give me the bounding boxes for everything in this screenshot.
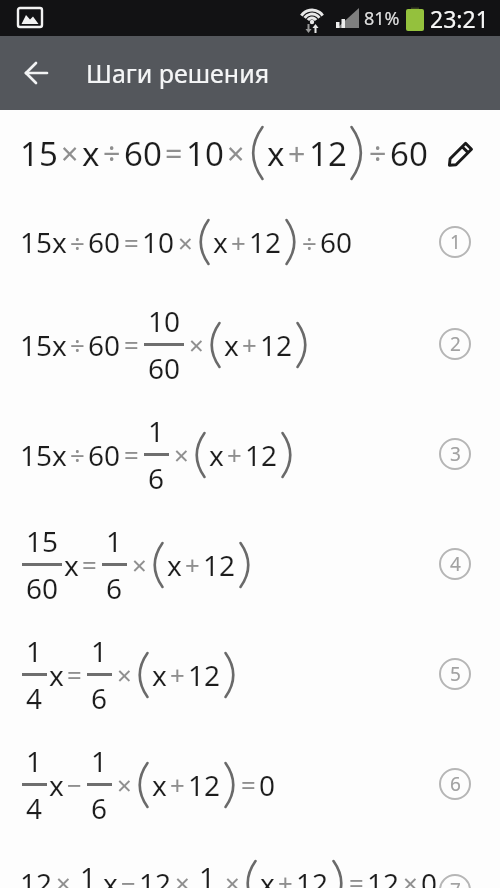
staticText: × bbox=[189, 327, 204, 362]
staticText: 12 bbox=[260, 326, 293, 364]
staticText: + bbox=[185, 547, 200, 582]
staticText: x bbox=[82, 131, 100, 176]
staticText: 12 bbox=[309, 131, 347, 176]
staticText: 6 bbox=[91, 679, 108, 717]
staticText: 60 bbox=[148, 349, 181, 387]
staticText: = bbox=[349, 865, 364, 888]
button[interactable]: 15x bbox=[0, 399, 500, 509]
staticText: 7 bbox=[450, 877, 461, 888]
staticText: 15x bbox=[20, 223, 67, 261]
staticText: 12 bbox=[296, 864, 329, 888]
staticText: 10 bbox=[148, 302, 181, 340]
staticText: × bbox=[132, 547, 147, 582]
staticText: ÷ bbox=[70, 225, 85, 260]
staticText: 1 bbox=[199, 858, 216, 888]
staticText: 15x bbox=[20, 436, 67, 474]
button[interactable]: 15 bbox=[0, 509, 500, 619]
staticText: 2 bbox=[450, 331, 461, 357]
staticText: × bbox=[117, 767, 132, 802]
staticText: x bbox=[167, 546, 182, 584]
staticText: + bbox=[170, 657, 185, 692]
staticText: 4 bbox=[450, 551, 461, 577]
staticText: ÷ bbox=[369, 133, 387, 174]
staticText: × bbox=[225, 865, 240, 888]
staticText: 4 bbox=[26, 679, 43, 717]
staticText: 6 bbox=[450, 771, 461, 797]
staticText: = bbox=[124, 437, 139, 472]
staticText: × bbox=[227, 133, 245, 174]
staticText: 15 bbox=[20, 131, 58, 176]
staticText: × bbox=[174, 437, 189, 472]
staticText: 10 bbox=[186, 131, 224, 176]
staticText: + bbox=[242, 327, 257, 362]
staticText: × bbox=[61, 133, 79, 174]
staticText: = bbox=[82, 547, 97, 582]
staticText: 12 bbox=[139, 864, 172, 888]
staticText: ÷ bbox=[70, 437, 85, 472]
staticText: = bbox=[67, 657, 82, 692]
staticText: x bbox=[49, 766, 64, 804]
staticText: x bbox=[209, 436, 224, 474]
staticText: + bbox=[231, 225, 246, 260]
staticText: 1 bbox=[450, 229, 461, 255]
staticText: ÷ bbox=[302, 225, 317, 260]
staticText: ÷ bbox=[103, 133, 121, 174]
staticText: = bbox=[241, 767, 256, 802]
staticText: + bbox=[288, 133, 306, 174]
staticText: 60 bbox=[88, 223, 121, 261]
staticText: 1 bbox=[106, 522, 123, 560]
staticText: + bbox=[170, 767, 185, 802]
button[interactable]: 12 bbox=[0, 839, 500, 888]
staticText: 60 bbox=[320, 223, 353, 261]
button[interactable]: 1 bbox=[0, 729, 500, 839]
staticText: x bbox=[213, 223, 228, 261]
staticText: + bbox=[227, 437, 242, 472]
staticText: 12 bbox=[367, 864, 400, 888]
staticText: 60 bbox=[390, 131, 428, 176]
button[interactable]: 15x bbox=[0, 289, 500, 399]
staticText: × bbox=[403, 865, 418, 888]
staticText: = bbox=[165, 133, 183, 174]
staticText: ÷ bbox=[70, 327, 85, 362]
staticText: 1 bbox=[91, 632, 108, 670]
staticText: = bbox=[124, 327, 139, 362]
staticText: 0 bbox=[259, 766, 276, 804]
staticText: + bbox=[278, 865, 293, 888]
staticText: 4 bbox=[26, 789, 43, 827]
staticText: x bbox=[103, 864, 118, 888]
staticText: − bbox=[121, 865, 136, 888]
staticText: × bbox=[178, 225, 193, 260]
staticText: 10 bbox=[142, 223, 175, 261]
staticText: x bbox=[260, 864, 275, 888]
staticText: 1 bbox=[148, 412, 165, 450]
staticText: x bbox=[267, 131, 285, 176]
staticText: 12 bbox=[245, 436, 278, 474]
staticText: − bbox=[67, 767, 82, 802]
staticText: 60 bbox=[124, 131, 162, 176]
button[interactable]: 1 bbox=[0, 619, 500, 729]
staticText: 81% bbox=[364, 6, 400, 31]
button[interactable]: 15 bbox=[0, 110, 500, 195]
staticText: 1 bbox=[26, 742, 43, 780]
staticText: 12 bbox=[188, 766, 221, 804]
staticText: x bbox=[49, 656, 64, 694]
staticText: 60 bbox=[88, 436, 121, 474]
staticText: 6 bbox=[106, 569, 123, 607]
staticText: 12 bbox=[249, 223, 282, 261]
staticText: 6 bbox=[91, 789, 108, 827]
staticText: 15x bbox=[20, 326, 67, 364]
staticText: x bbox=[64, 546, 79, 584]
staticText: 12 bbox=[20, 864, 53, 888]
staticText: × bbox=[175, 865, 190, 888]
staticText: x bbox=[224, 326, 239, 364]
staticText: 1 bbox=[80, 858, 97, 888]
staticText: 12 bbox=[188, 656, 221, 694]
staticText: 60 bbox=[88, 326, 121, 364]
staticText: 23:21 bbox=[430, 3, 489, 34]
staticText: × bbox=[117, 657, 132, 692]
button[interactable]: 15x bbox=[0, 195, 500, 289]
staticText: x bbox=[152, 766, 167, 804]
staticText: 12 bbox=[203, 546, 236, 584]
staticText: 1 bbox=[26, 632, 43, 670]
button[interactable] bbox=[0, 36, 74, 110]
